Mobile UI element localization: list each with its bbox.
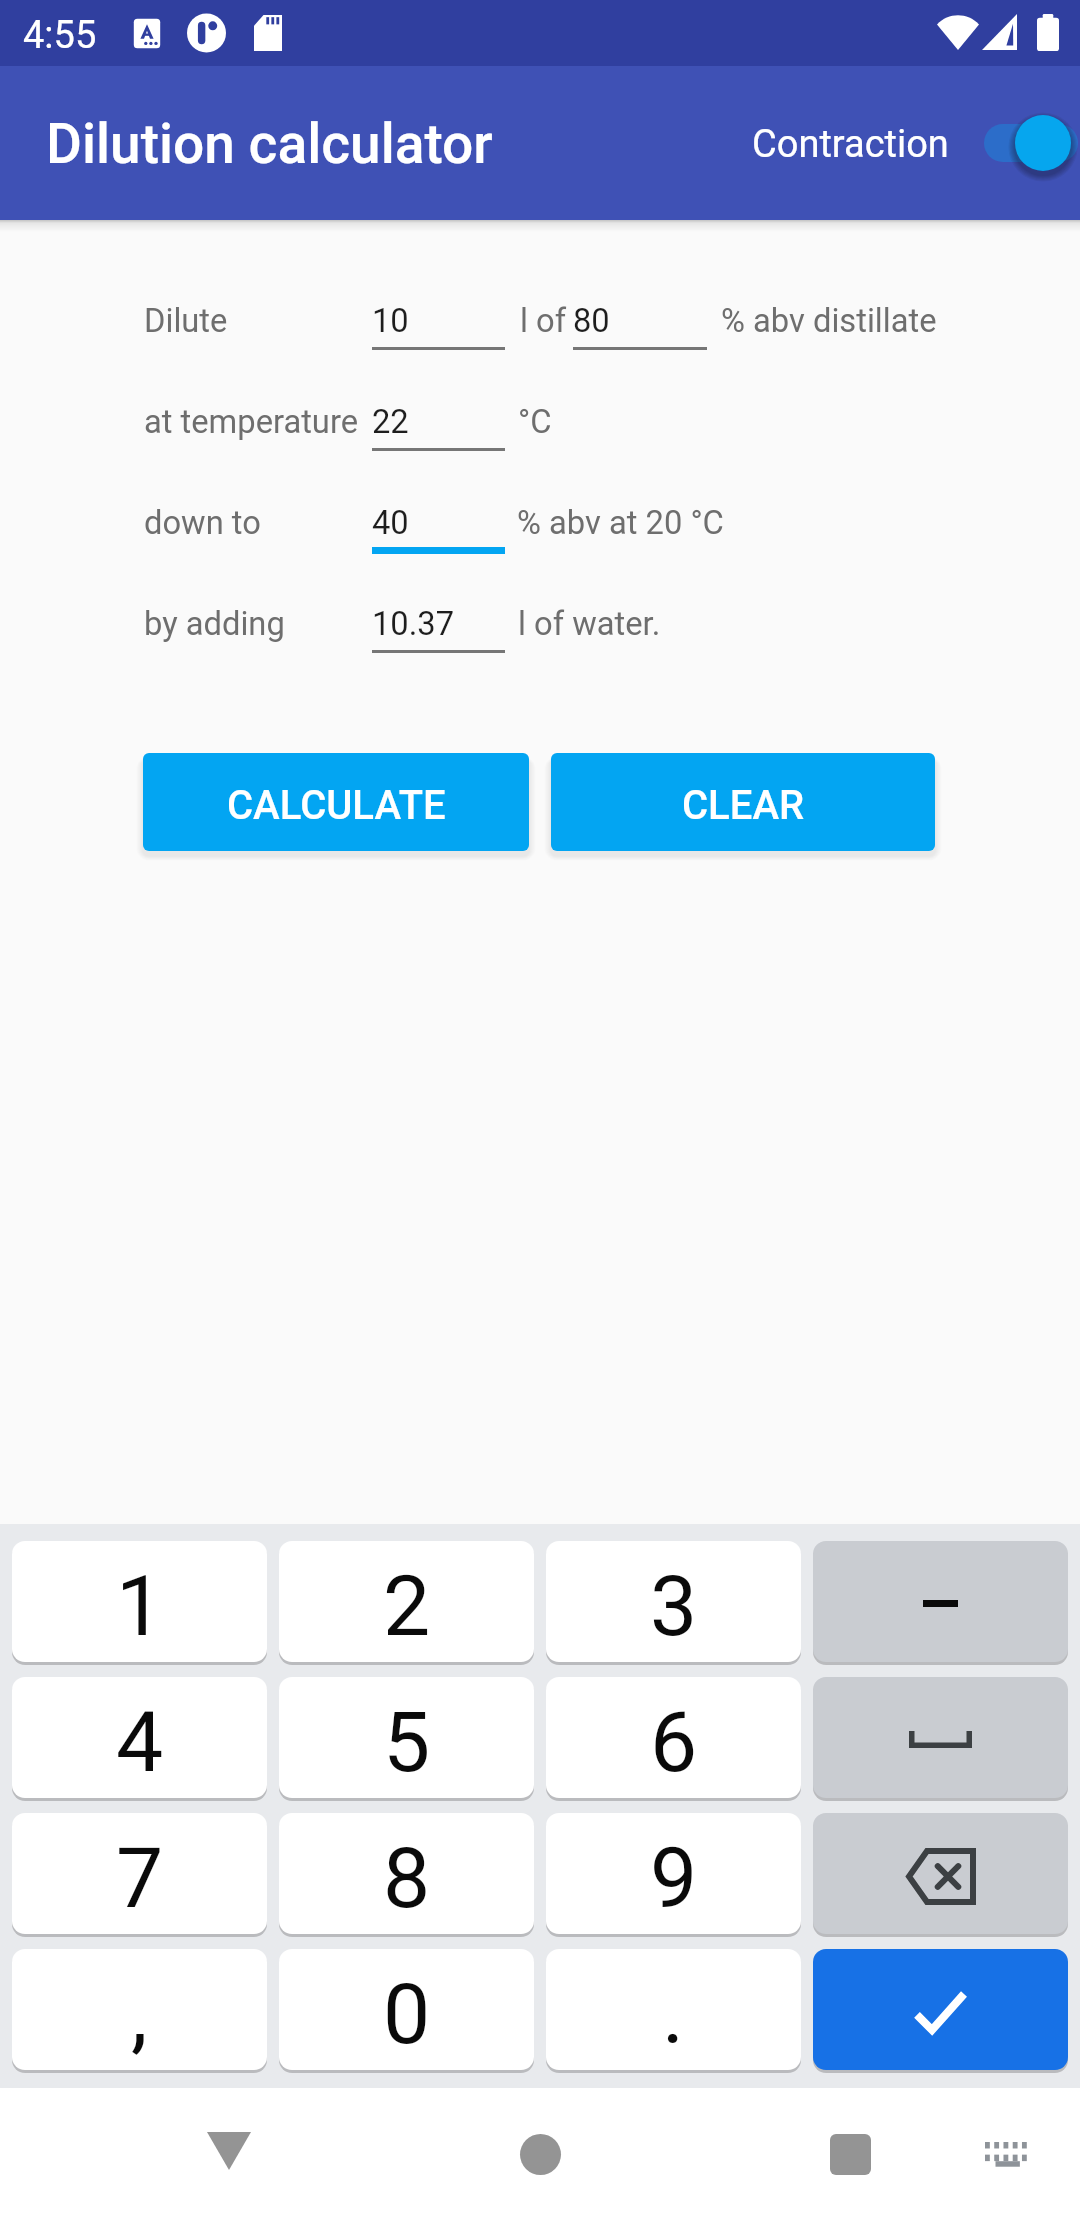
staticText: 9 [650, 1829, 698, 1927]
button[interactable]: Home [472, 2088, 608, 2220]
staticText: 7 [116, 1829, 164, 1927]
staticText: 8 [383, 1829, 431, 1927]
button[interactable]: Space [813, 1677, 1068, 1798]
button[interactable]: Value 40 [372, 484, 505, 556]
staticText: 5 [383, 1693, 431, 1791]
button[interactable]: Switch keyboard [946, 2088, 1066, 2220]
staticText: 4 [116, 1693, 164, 1791]
button[interactable]: Backspace [813, 1813, 1068, 1934]
button[interactable]: Value 10 [372, 282, 505, 354]
button[interactable]: 2 [279, 1541, 534, 1662]
staticText: 40 [372, 504, 409, 542]
button[interactable]: Contraction toggle [975, 66, 1080, 220]
staticText: CALCULATE [227, 782, 446, 829]
staticText: % abv distillate [721, 302, 937, 340]
button[interactable]: Minus [813, 1541, 1068, 1662]
staticText: 3 [650, 1557, 698, 1655]
button[interactable]: Enter [813, 1949, 1068, 2070]
staticText: °C [518, 403, 552, 441]
button[interactable]: 3 [546, 1541, 801, 1662]
staticText: 22 [372, 403, 409, 441]
button[interactable]: 8 [279, 1813, 534, 1934]
button[interactable]: 9 [546, 1813, 801, 1934]
staticText: 4:55 [23, 13, 97, 58]
button[interactable]: . [546, 1949, 801, 2070]
button[interactable]: 0 [279, 1949, 534, 2070]
button[interactable]: 5 [279, 1677, 534, 1798]
button[interactable]: 1 [12, 1541, 267, 1662]
staticText: 0 [383, 1965, 431, 2063]
staticText: 10.37 [372, 605, 455, 643]
staticText: Dilute [144, 302, 228, 340]
staticText: 1 [116, 1557, 164, 1655]
staticText: 6 [650, 1693, 698, 1791]
staticText: by adding [144, 605, 285, 643]
staticText: at temperature [144, 403, 359, 441]
button[interactable]: 4 [12, 1677, 267, 1798]
staticText: CLEAR [682, 782, 804, 829]
staticText: . [662, 1965, 685, 2063]
staticText: Dilution calculator [46, 112, 493, 176]
staticText: down to [144, 504, 261, 542]
staticText: 2 [383, 1557, 431, 1655]
staticText: Contraction [752, 122, 949, 167]
button[interactable]: 7 [12, 1813, 267, 1934]
button[interactable]: Recent apps [782, 2088, 918, 2220]
button[interactable]: Value 80 [573, 282, 707, 354]
staticText: , [131, 1965, 148, 2063]
staticText: l of [520, 302, 567, 340]
staticText: 10 [372, 302, 409, 340]
button[interactable]: Value 22 [372, 383, 505, 455]
button[interactable]: CLEAR [551, 753, 935, 851]
button[interactable]: 6 [546, 1677, 801, 1798]
staticText: % abv at 20 °C [517, 504, 724, 542]
button[interactable]: Value 10.37 [372, 585, 505, 657]
staticText: 80 [573, 302, 610, 340]
button[interactable]: Back [160, 2088, 297, 2220]
staticText: l of water. [518, 605, 661, 643]
button[interactable]: CALCULATE [143, 753, 529, 851]
button[interactable]: , [12, 1949, 267, 2070]
